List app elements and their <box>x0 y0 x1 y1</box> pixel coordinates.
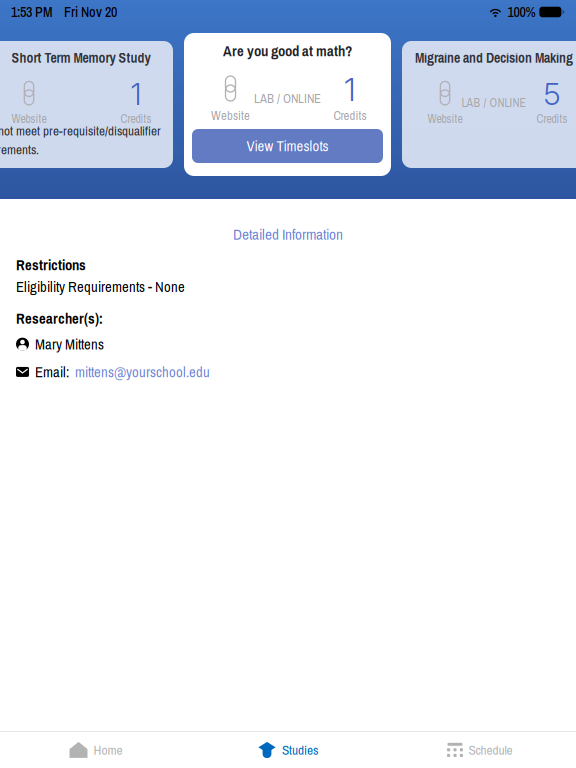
button[interactable]: Schedule <box>384 732 576 768</box>
staticText: 1 <box>344 70 356 109</box>
staticText: Schedule <box>468 741 512 759</box>
staticText: 1 <box>130 76 141 112</box>
button[interactable]: View Timeslots <box>192 129 383 163</box>
staticText: Detailed Information <box>233 224 343 245</box>
staticText: does not meet pre-requisite/disqualifier <box>0 122 161 139</box>
staticText: 5 <box>543 76 560 112</box>
staticText: LAB / ONLINE <box>254 90 321 107</box>
staticText: Mary Mittens <box>35 334 104 354</box>
button[interactable]: Studies <box>192 732 384 768</box>
staticText: requirements. <box>0 141 39 158</box>
staticText: Website <box>11 111 46 127</box>
staticText: Email: <box>35 362 69 382</box>
staticText: 100% <box>507 3 535 21</box>
staticText: Home <box>93 741 122 759</box>
staticText: Credits <box>536 111 567 127</box>
staticText: Website <box>427 111 462 127</box>
staticText: Eligibility Requirements - None <box>16 277 185 297</box>
button[interactable]: Home <box>0 732 192 768</box>
staticText: Researcher(s): <box>16 308 103 328</box>
staticText: View Timeslots <box>246 136 328 156</box>
staticText: Are you good at math? <box>223 41 352 61</box>
staticText: Short Term Memory Study <box>11 48 150 67</box>
staticText: Credits <box>120 111 151 127</box>
staticText: Restrictions <box>16 255 86 275</box>
staticText: mittens@yourschool.edu <box>75 362 210 382</box>
staticText: 1:53 PM <box>11 3 53 21</box>
staticText: Website <box>211 107 250 124</box>
staticText: Migraine and Decision Making <box>415 48 573 67</box>
staticText: Credits <box>333 107 366 124</box>
button[interactable]: mittens@yourschool.edu <box>75 362 210 382</box>
staticText: Fri Nov 20 <box>64 3 117 21</box>
button[interactable]: Detailed Information <box>0 217 576 252</box>
staticText: Studies <box>282 741 318 759</box>
staticText: LAB / ONLINE <box>461 95 526 111</box>
